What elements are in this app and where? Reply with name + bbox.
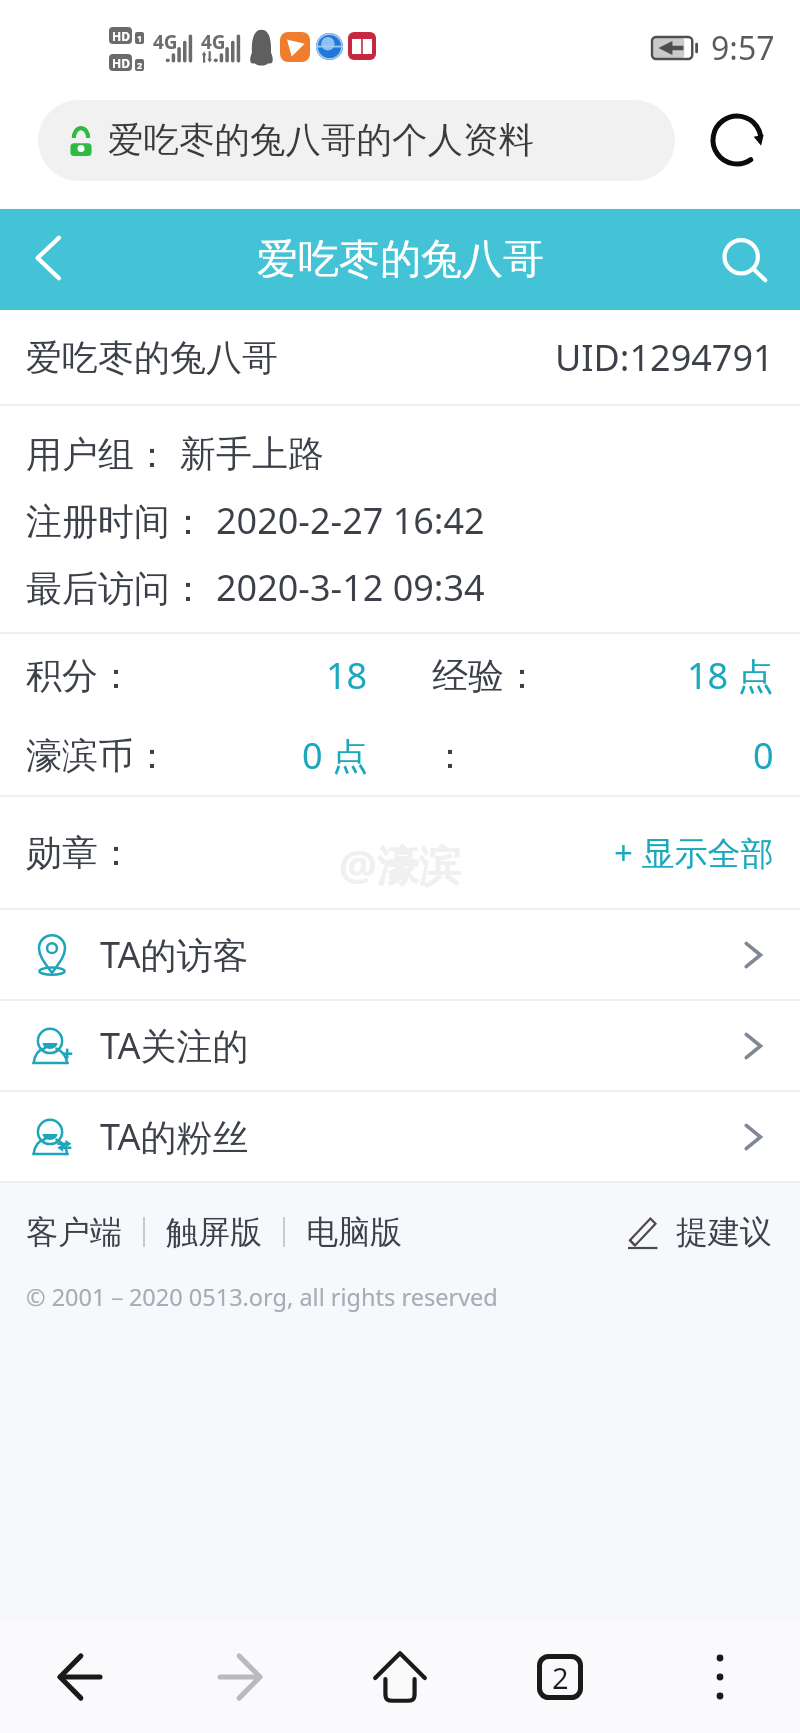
button[interactable]: TA的粉丝 [0,1092,800,1181]
button[interactable]: 爱吃枣的兔八哥的个人资料 [38,100,675,181]
staticText: 0 点 [302,731,368,780]
staticText: UID:1294791 [555,333,774,382]
staticText: 2020-2-27 16:42 [216,496,485,545]
button[interactable]: Home [320,1621,480,1733]
button[interactable]: Tabs [480,1621,640,1733]
button[interactable]: More options [640,1621,800,1733]
staticText: 爱吃枣的兔八哥 [257,234,544,286]
staticText: 2020-3-12 09:34 [216,563,485,612]
staticText: TA关注的 [100,1021,249,1070]
staticText: 提建议 [676,1212,772,1252]
staticText: @濠滨 [339,836,461,893]
staticText: 勋章： [26,830,134,875]
button[interactable]: 电脑版 [306,1212,402,1252]
button[interactable]: Forward [160,1621,320,1733]
staticText: 18 [326,651,368,700]
staticText: 触屏版 [166,1212,262,1252]
button[interactable]: Back [0,1621,160,1733]
staticText: 爱吃枣的兔八哥的个人资料 [108,118,534,163]
button[interactable]: Search [700,209,800,310]
staticText: 4G [201,29,226,55]
button[interactable]: Back [0,209,96,310]
staticText: 新手上路 [180,431,324,476]
button[interactable]: Reload [705,108,769,172]
staticText: © 2001－2020 0513.org, all rights reserve… [26,1281,498,1313]
staticText: 9:57 [711,26,775,70]
staticText: 濠滨币： [26,733,170,778]
staticText: ： [432,733,468,778]
staticText: HD [112,55,130,71]
staticText: 2 [552,1658,569,1697]
staticText: 经验： [432,653,540,698]
staticText: HD [112,28,130,44]
button[interactable]: TA的访客 [0,910,800,999]
staticText: 用户组： [26,429,180,478]
staticText: 客户端 [26,1212,122,1252]
staticText: 积分： [26,653,134,698]
staticText: 1 [137,32,143,44]
button[interactable]: + 显示全部 [614,830,774,875]
staticText: 注册时间： [26,496,216,545]
staticText: + 显示全部 [614,830,774,875]
staticText: 4G [153,29,178,55]
staticText: 电脑版 [306,1212,402,1252]
staticText: 2 [137,59,143,71]
staticText: TA的访客 [100,930,249,979]
button[interactable]: TA关注的 [0,1001,800,1090]
button[interactable]: 触屏版 [166,1212,262,1252]
staticText: 0 [753,731,774,780]
staticText: 最后访问： [26,563,216,612]
staticText: 18 点 [687,651,774,700]
staticText: TA的粉丝 [100,1112,249,1161]
button[interactable]: 提建议 [628,1212,772,1252]
button[interactable]: 客户端 [26,1212,122,1252]
staticText: 爱吃枣的兔八哥 [26,335,278,380]
